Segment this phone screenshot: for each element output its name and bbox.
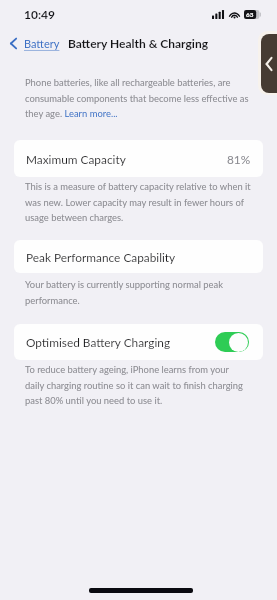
staticText: Maximum Capacity: [26, 152, 126, 166]
staticText: Battery Health & Charging: [68, 36, 209, 50]
staticText: Your battery is currently supporting nor…: [25, 279, 224, 306]
staticText: 63: [246, 11, 254, 19]
staticText: Battery: [24, 37, 60, 50]
staticText: Peak Performance Capability: [26, 250, 176, 264]
staticText: 10:49: [24, 7, 55, 21]
button[interactable]: Back: [258, 31, 277, 95]
button[interactable]: Optimised Battery Charging: [14, 324, 263, 360]
button[interactable]: Optimised Battery Charging: [215, 332, 249, 352]
button[interactable]: Battery: [10, 37, 60, 50]
button[interactable]: Maximum Capacity: [14, 140, 263, 177]
staticText: To reduce battery ageing, iPhone learns …: [25, 364, 243, 406]
staticText: This is a measure of battery capacity re…: [25, 181, 251, 223]
staticText: Optimised Battery Charging: [26, 335, 171, 349]
button[interactable]: Peak Performance Capability: [14, 240, 263, 273]
button[interactable]: Phone batteries, like all rechargeable b…: [25, 77, 249, 119]
staticText: 81%: [227, 152, 251, 166]
